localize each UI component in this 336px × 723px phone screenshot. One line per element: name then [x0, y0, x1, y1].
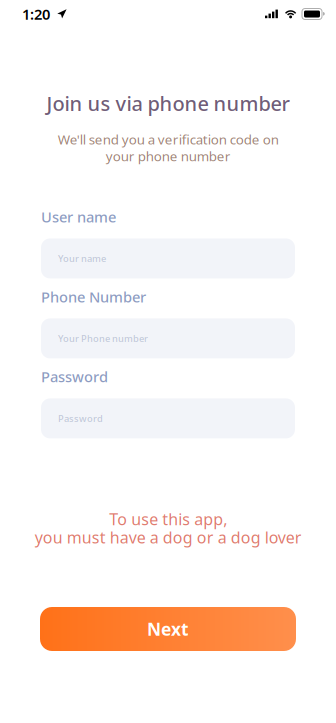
staticText: 1:20: [22, 4, 50, 24]
button[interactable]: Password: [41, 398, 295, 438]
staticText: Join us via phone number: [46, 90, 289, 117]
staticText: Next: [147, 617, 189, 640]
staticText: To use this app, you must have a dog or …: [34, 508, 301, 548]
staticText: We'll send you a verification code on yo…: [57, 131, 278, 165]
staticText: User name: [41, 207, 116, 226]
staticText: Password: [58, 412, 103, 425]
staticText: Your name: [58, 252, 106, 265]
staticText: Your Phone number: [58, 332, 148, 345]
button[interactable]: Your name: [41, 238, 295, 278]
staticText: Password: [41, 367, 108, 386]
button[interactable]: Next: [40, 607, 296, 651]
staticText: Phone Number: [41, 287, 146, 306]
button[interactable]: Your Phone number: [41, 318, 295, 358]
